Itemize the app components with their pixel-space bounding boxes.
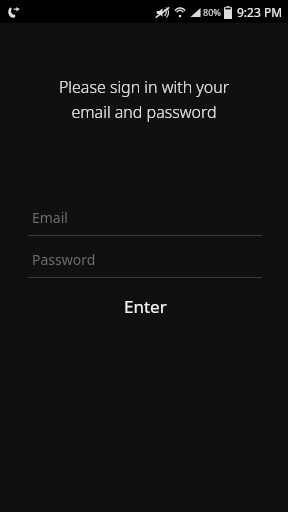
button[interactable]: Email bbox=[28, 205, 262, 236]
staticText: Password bbox=[32, 250, 96, 269]
staticText: Enter bbox=[124, 295, 167, 318]
staticText: 80% bbox=[203, 6, 221, 18]
staticText: 9:23 PM bbox=[237, 4, 283, 20]
staticText: Please sign in with your email and passw… bbox=[12, 76, 276, 122]
button[interactable]: Password bbox=[28, 247, 262, 278]
staticText: Email bbox=[32, 208, 68, 227]
button[interactable]: Enter bbox=[28, 290, 262, 322]
other: Missed call bbox=[6, 5, 20, 19]
